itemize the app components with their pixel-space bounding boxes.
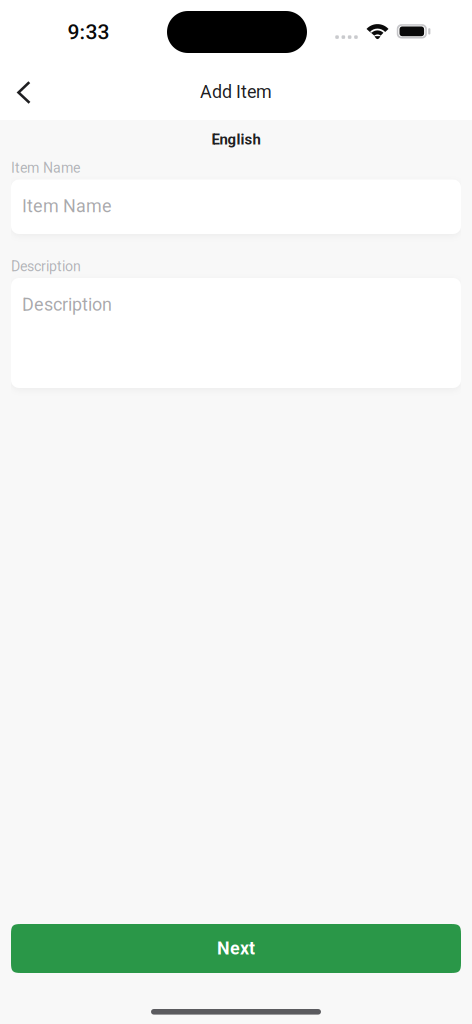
staticText: English	[211, 131, 260, 148]
button[interactable]: Item Name	[11, 179, 461, 234]
staticText: Description	[22, 294, 112, 315]
button[interactable]: Back	[0, 68, 48, 116]
button[interactable]: Next	[11, 924, 461, 973]
button[interactable]: Description	[11, 278, 461, 388]
staticText: Description	[11, 258, 81, 275]
staticText: Next	[217, 938, 255, 959]
staticText: 9:33	[67, 20, 109, 44]
staticText: Add Item	[200, 81, 272, 102]
staticText: Item Name	[22, 195, 112, 216]
staticText: Item Name	[11, 160, 80, 176]
